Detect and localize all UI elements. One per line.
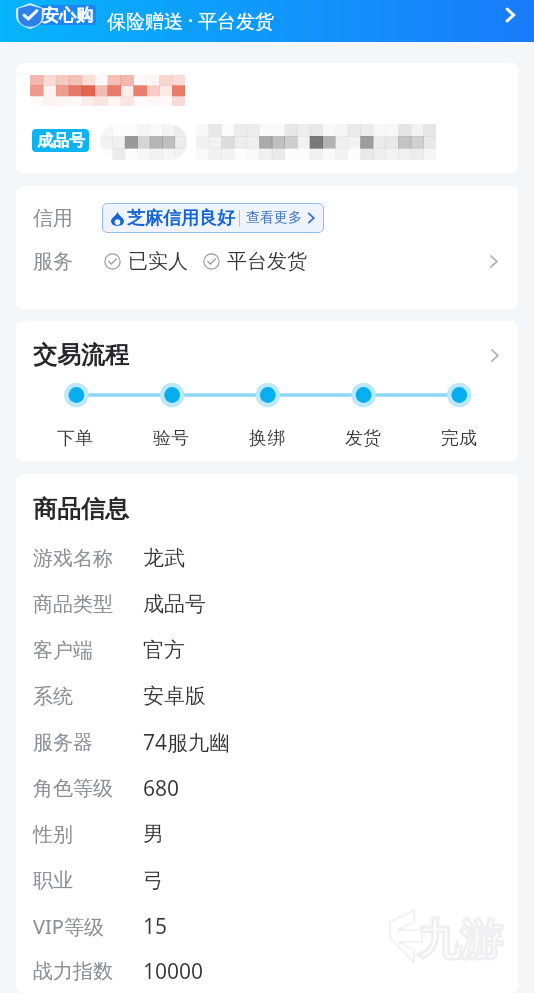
staticText: 性别 xyxy=(33,822,73,847)
staticText: 保险赠送 · 平台发货 xyxy=(107,8,274,34)
staticText: 74服九幽 xyxy=(143,728,231,757)
staticText: 680 xyxy=(143,774,180,803)
button[interactable]: 服务 xyxy=(16,247,518,275)
staticText: 商品信息 xyxy=(33,494,129,524)
staticText: 角色等级 xyxy=(33,776,113,801)
button[interactable]: 成品号 xyxy=(16,63,518,173)
staticText: 商品类型 xyxy=(33,592,113,617)
staticText: 安心购 xyxy=(42,5,93,25)
staticText: 职业 xyxy=(33,868,73,893)
staticText: 芝麻信用良好 xyxy=(127,207,235,230)
staticText: 安卓版 xyxy=(143,683,206,709)
staticText: 客户端 xyxy=(33,638,93,663)
button[interactable]: 交易流程 xyxy=(16,340,518,370)
staticText: 发货 xyxy=(345,427,381,450)
staticText: 信用 xyxy=(33,206,73,231)
staticText: 服务器 xyxy=(33,730,93,755)
staticText: 成品号 xyxy=(143,591,206,617)
staticText: 查看更多 xyxy=(246,209,302,227)
staticText: 弓 xyxy=(143,867,164,893)
staticText: 男 xyxy=(143,821,164,847)
staticText: 游戏名称 xyxy=(33,546,113,571)
staticText: 10000 xyxy=(143,957,204,986)
staticText: 15 xyxy=(143,912,168,941)
staticText: 交易流程 xyxy=(33,340,129,370)
staticText: 平台发货 xyxy=(227,249,307,274)
staticText: 验号 xyxy=(153,427,189,450)
staticText: 九游 xyxy=(418,914,502,967)
staticText: 下单 xyxy=(57,427,93,450)
button[interactable]: 安心购 xyxy=(0,0,534,42)
staticText: 换绑 xyxy=(249,427,285,450)
staticText: VIP等级 xyxy=(33,913,104,940)
staticText: 龙武 xyxy=(143,545,185,571)
staticText: 完成 xyxy=(441,427,477,450)
button[interactable]: 查看详情 xyxy=(498,4,522,26)
staticText: 战力指数 xyxy=(33,959,113,984)
staticText: 系统 xyxy=(33,684,73,709)
staticText: 成品号 xyxy=(37,131,85,151)
staticText: 服务 xyxy=(33,249,73,274)
button[interactable]: 芝麻信用良好 xyxy=(102,203,324,233)
staticText: 已实人 xyxy=(128,249,188,274)
staticText: 官方 xyxy=(143,637,185,663)
